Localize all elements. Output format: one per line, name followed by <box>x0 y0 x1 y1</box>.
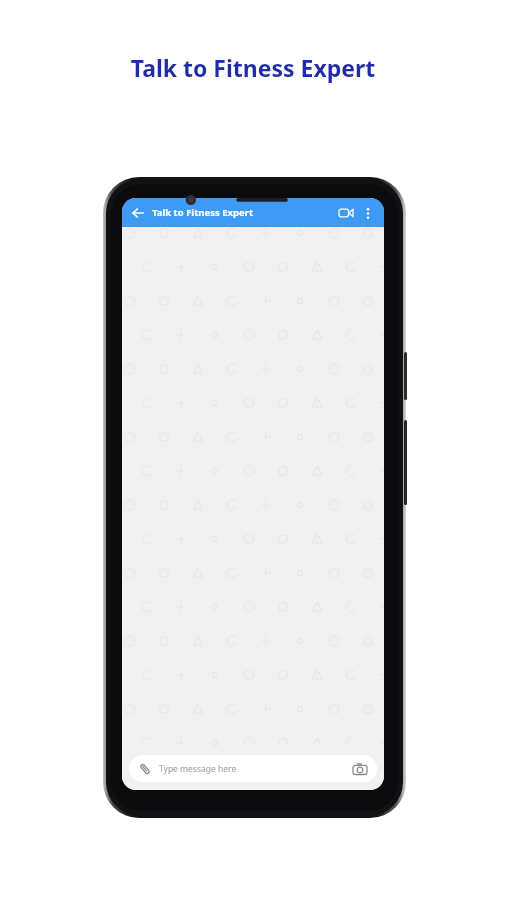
button[interactable]: Video call <box>336 203 356 223</box>
button[interactable]: Attach file <box>129 755 377 782</box>
button[interactable]: Camera <box>351 760 369 778</box>
button[interactable]: More options <box>359 204 377 222</box>
button[interactable]: Back <box>129 204 147 222</box>
staticText: Talk to Fitness Expert <box>152 206 336 219</box>
staticText: Talk to Fitness Expert <box>0 52 506 83</box>
other: Attach file <box>137 761 153 777</box>
staticText: Type message here <box>159 763 351 775</box>
